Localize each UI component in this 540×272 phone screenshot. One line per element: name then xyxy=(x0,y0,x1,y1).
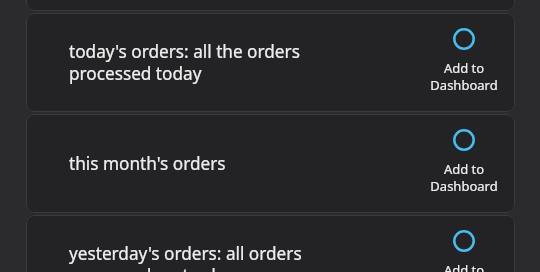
staticText: Add to Dashboard xyxy=(430,261,498,272)
button[interactable]: Add to Dashboard xyxy=(412,114,515,213)
button[interactable]: today's orders: all the orders processed… xyxy=(26,13,515,112)
staticText: Add to Dashboard xyxy=(430,59,498,94)
staticText: this month's orders xyxy=(69,152,319,175)
button[interactable]: Add to Dashboard xyxy=(412,215,515,272)
staticText: today's orders: all the orders processed… xyxy=(69,40,319,85)
button[interactable]: this week's orders xyxy=(26,0,515,11)
button[interactable]: yesterday's orders: all orders processed… xyxy=(26,215,515,272)
staticText: Add to Dashboard xyxy=(430,160,498,195)
button[interactable]: Add to Dashboard xyxy=(412,13,515,112)
staticText: yesterday's orders: all orders processed… xyxy=(69,242,319,272)
button[interactable]: this month's orders xyxy=(26,114,515,213)
button[interactable]: Add to Dashboard xyxy=(412,0,515,11)
